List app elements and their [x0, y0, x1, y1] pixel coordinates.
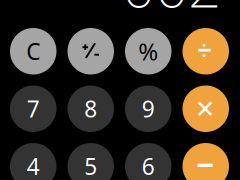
button[interactable]: 4: [10, 143, 56, 180]
staticText: 9: [142, 94, 155, 124]
button[interactable]: Multiply: [182, 85, 229, 132]
staticText: 5: [84, 151, 97, 180]
button[interactable]: Divide: [182, 28, 229, 74]
button[interactable]: Plus minus: [67, 28, 114, 74]
button[interactable]: 6: [125, 143, 171, 180]
staticText: C: [26, 36, 40, 66]
staticText: %: [138, 35, 158, 67]
button[interactable]: 8: [67, 85, 114, 132]
staticText: 8: [84, 94, 97, 124]
button[interactable]: %: [125, 28, 171, 74]
staticText: 4: [27, 151, 40, 180]
button[interactable]: 5: [67, 143, 114, 180]
staticText: 002: [122, 0, 221, 24]
button[interactable]: Minus: [182, 143, 229, 180]
staticText: 7: [27, 94, 40, 124]
button[interactable]: 9: [125, 85, 171, 132]
staticText: 6: [142, 151, 155, 180]
button[interactable]: 7: [10, 85, 56, 132]
button[interactable]: C: [10, 28, 56, 74]
